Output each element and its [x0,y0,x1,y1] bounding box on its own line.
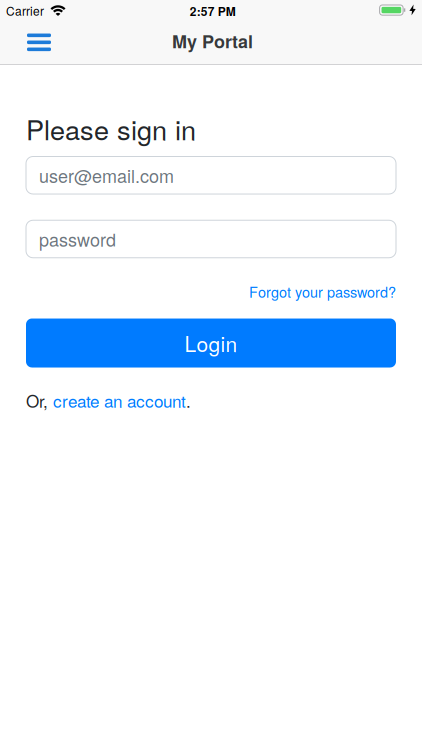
staticText: Or, [26,388,53,413]
staticText: . [186,388,191,413]
staticText: Carrier [6,2,44,19]
staticText: My Portal [172,28,253,54]
staticText: password [39,226,116,252]
staticText: Please sign in [26,109,196,148]
staticText: create an account [53,388,186,413]
staticText: Forgot your password? [249,281,396,302]
staticText: 2:57 PM [190,2,236,20]
staticText: Login [184,328,237,358]
staticText: user@email.com [39,162,174,188]
